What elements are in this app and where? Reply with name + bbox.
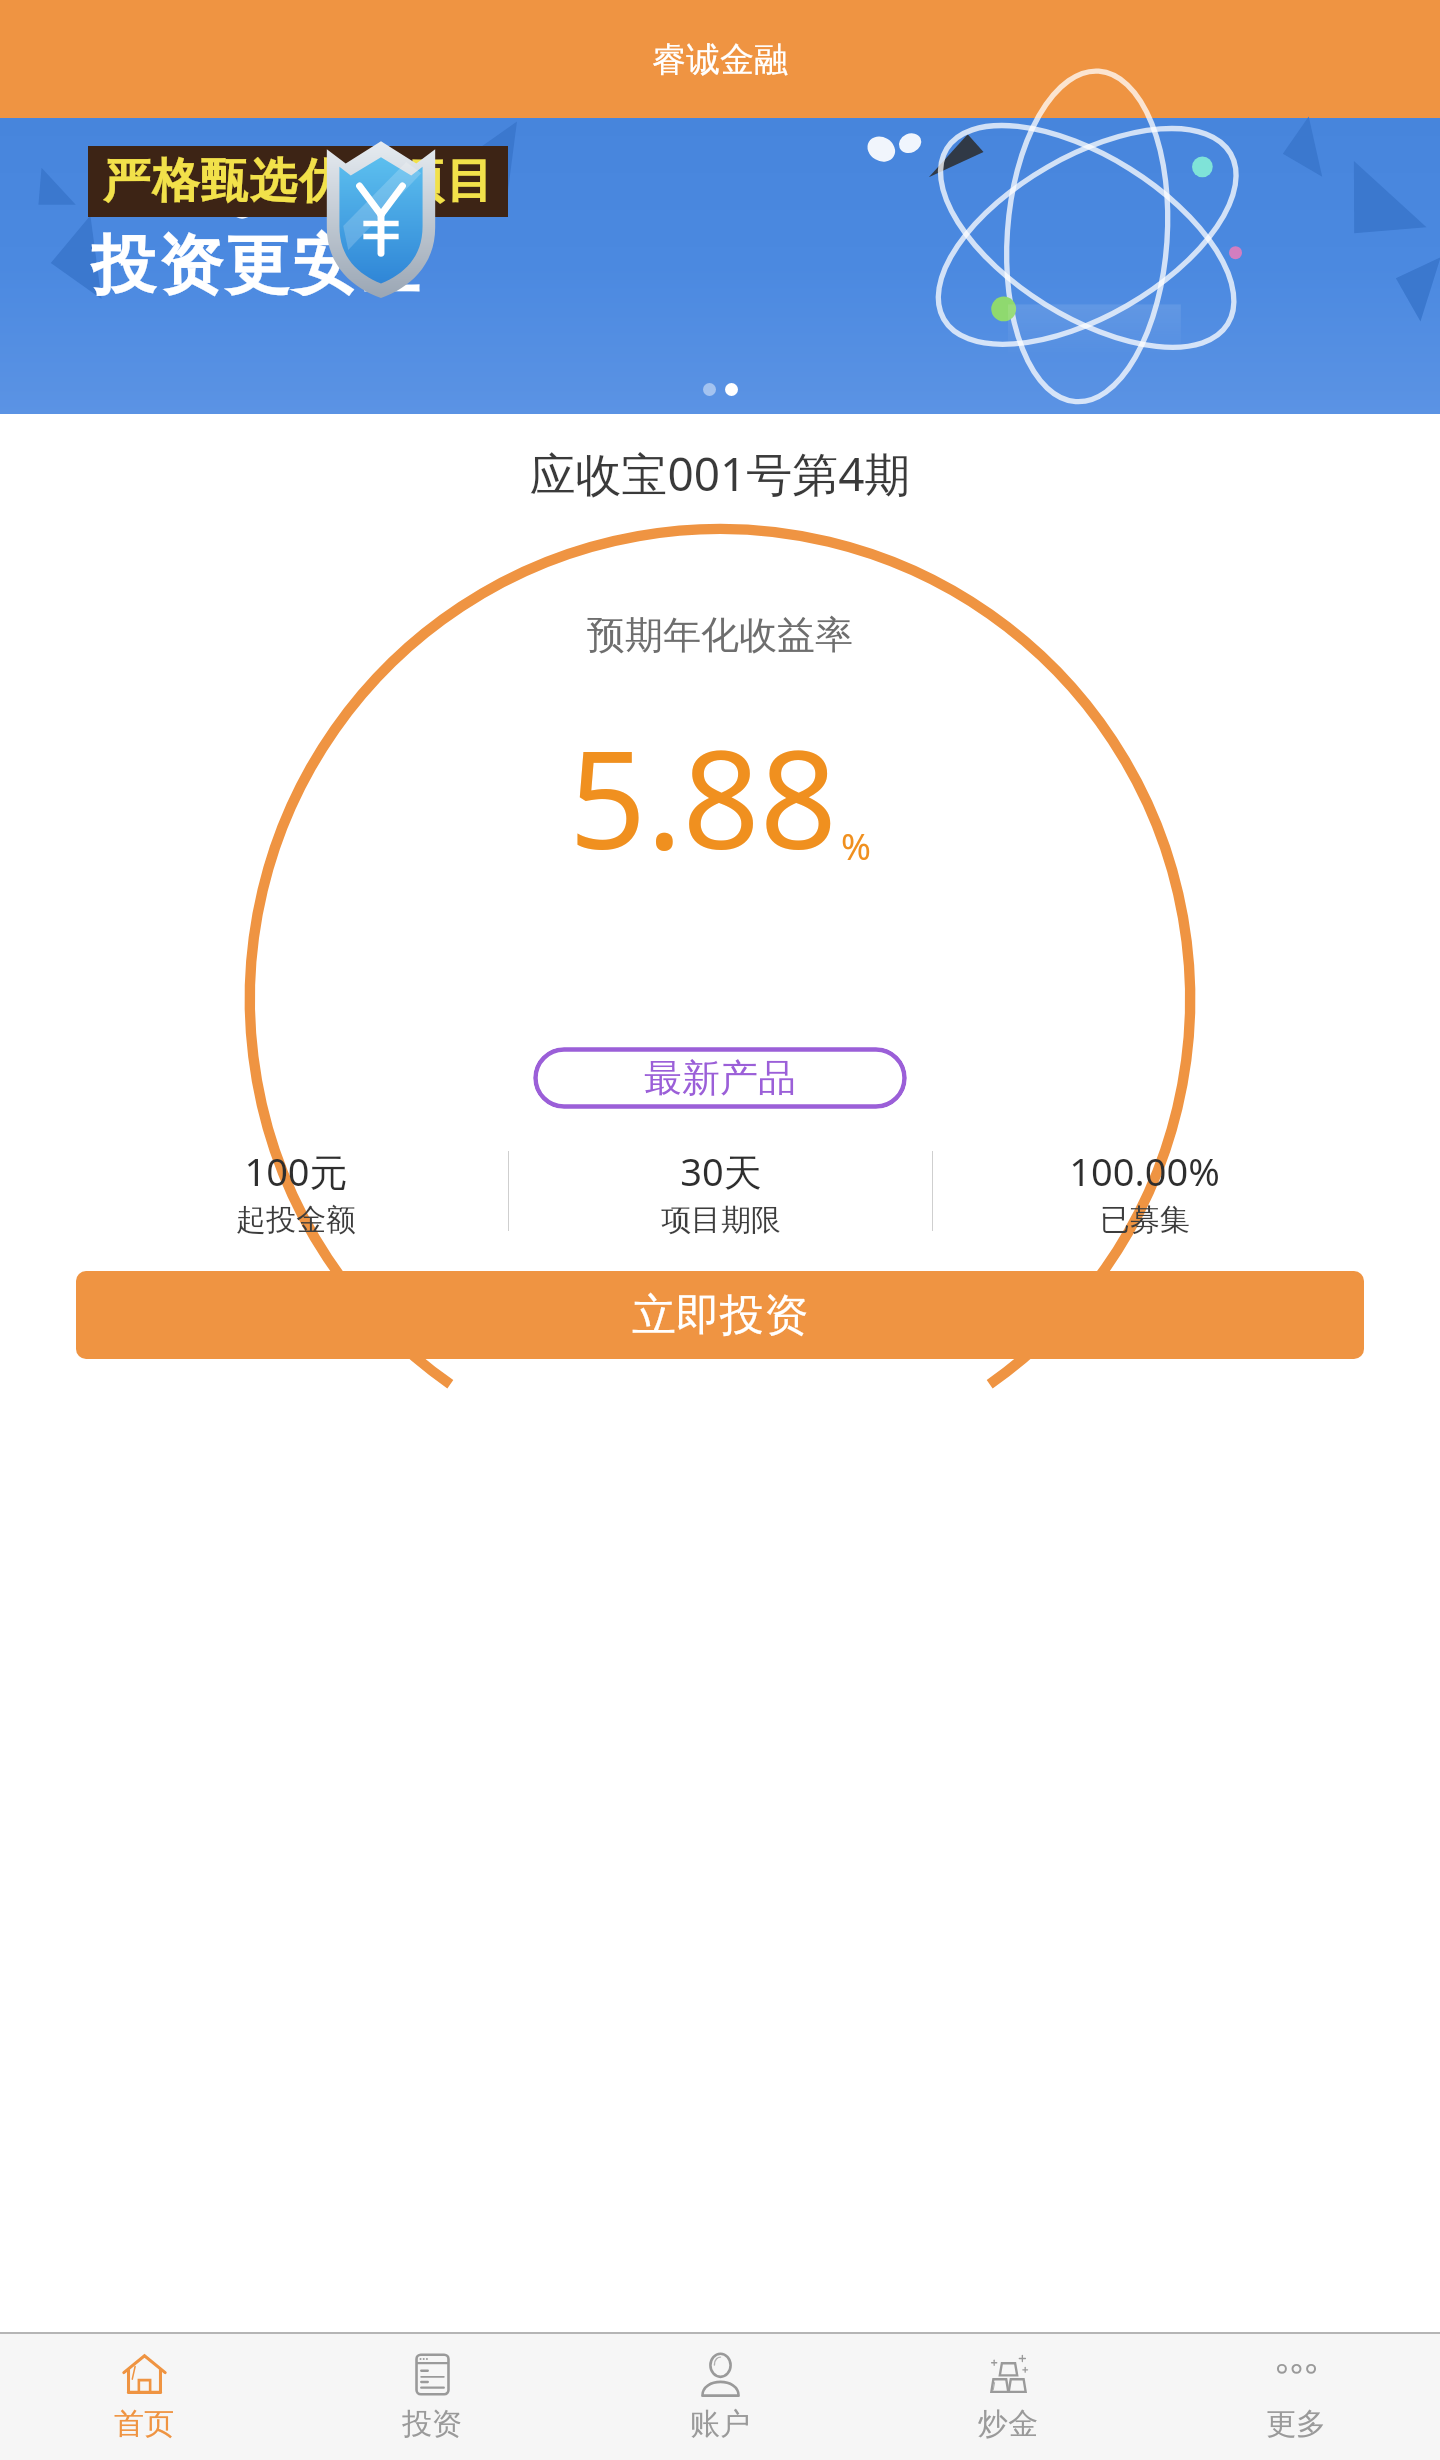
button[interactable]: 更多 <box>1152 2334 1440 2460</box>
staticText: % <box>841 822 871 871</box>
staticText: 更多 <box>1266 2405 1326 2443</box>
staticText: 100元 <box>244 1145 348 1197</box>
staticText: 应收宝001号第4期 <box>529 442 911 505</box>
staticText: 首页 <box>114 2405 174 2443</box>
staticText: 严格甄选优质项目 <box>102 152 494 211</box>
staticText: 账户 <box>690 2405 750 2443</box>
staticText: 已募集 <box>1100 1201 1190 1237</box>
staticText: 睿诚金融 <box>652 38 788 81</box>
staticText: 5.88 <box>569 705 837 889</box>
staticText: 投资 <box>402 2405 462 2443</box>
staticText: 投资更安全 <box>90 225 425 306</box>
staticText: 项目期限 <box>661 1201 781 1237</box>
staticText: 预期年化收益率 <box>587 611 853 659</box>
staticText: 30天 <box>680 1145 762 1197</box>
staticText: 炒金 <box>978 2405 1038 2443</box>
button[interactable]: 立即投资 <box>76 1271 1364 1359</box>
staticText: 立即投资 <box>632 1288 808 1343</box>
staticText: 最新产品 <box>644 1054 796 1102</box>
button[interactable]: 投资 <box>288 2334 576 2460</box>
button[interactable]: 账户 <box>576 2334 864 2460</box>
button[interactable]: 炒金 <box>864 2334 1152 2460</box>
button[interactable]: 首页 <box>0 2334 288 2460</box>
staticText: 起投金额 <box>236 1201 356 1237</box>
staticText: 100.00% <box>1069 1145 1220 1197</box>
button[interactable]: 严格甄选优质项目 <box>0 118 1440 414</box>
button[interactable]: 最新产品 <box>533 1047 907 1109</box>
